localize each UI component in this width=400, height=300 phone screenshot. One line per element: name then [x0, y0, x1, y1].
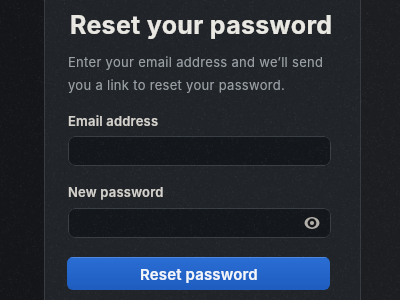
button[interactable]: [68, 136, 331, 166]
button[interactable]: Reset password: [67, 257, 330, 290]
button[interactable]: [68, 208, 331, 238]
staticText: Reset your password: [70, 10, 333, 40]
staticText: Enter your email address and we’ll send …: [68, 54, 324, 93]
staticText: Email address: [68, 113, 159, 129]
staticText: New password: [68, 184, 164, 200]
button[interactable]: [301, 212, 323, 234]
staticText: Reset password: [140, 265, 258, 283]
